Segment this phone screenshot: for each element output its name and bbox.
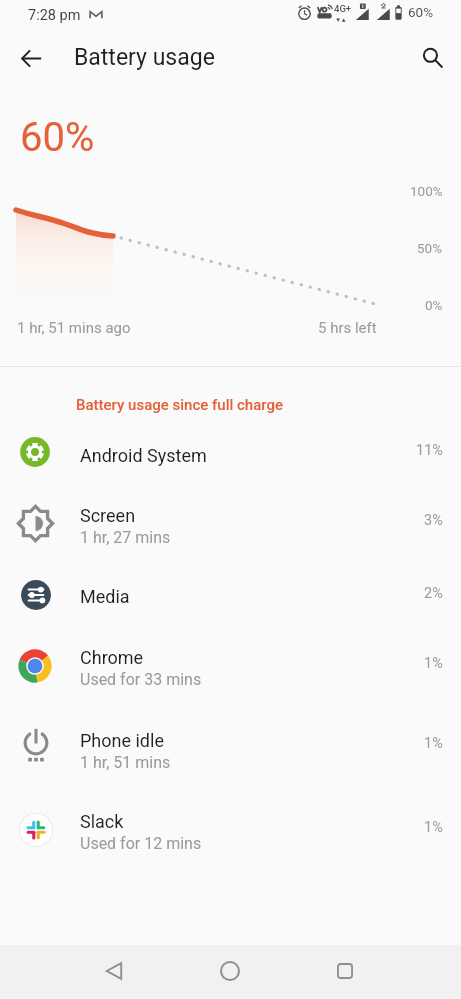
button[interactable]: Back	[90, 947, 138, 995]
staticText: Battery usage since full charge	[76, 396, 283, 414]
staticText: 50%	[417, 240, 443, 256]
staticText: Battery usage	[74, 44, 215, 71]
button[interactable]: Recents	[321, 947, 369, 995]
staticText: 0%	[425, 297, 443, 313]
staticText: 1%	[424, 655, 443, 672]
staticText: Android System	[80, 445, 207, 466]
staticText: 7:28 pm	[28, 7, 81, 24]
staticText: Slack	[80, 811, 124, 832]
staticText: 2%	[424, 585, 443, 602]
staticText: 60%	[20, 114, 95, 161]
staticText: 60%	[408, 4, 434, 20]
staticText: Screen	[80, 505, 136, 526]
button[interactable]	[0, 559, 461, 621]
staticText: Media	[80, 586, 130, 607]
button[interactable]	[0, 416, 461, 478]
button[interactable]	[0, 709, 461, 783]
button[interactable]: Back	[10, 37, 52, 79]
button[interactable]	[0, 793, 461, 867]
staticText: 1 hr, 51 mins	[80, 753, 171, 772]
staticText: 4G+	[334, 3, 352, 14]
staticText: Used for 33 mins	[80, 670, 202, 689]
button[interactable]: Home	[206, 947, 254, 995]
staticText: 1 hr, 51 mins ago	[17, 319, 131, 337]
staticText: Phone idle	[80, 730, 164, 751]
staticText: 5 hrs left	[318, 319, 377, 337]
staticText: 11%	[416, 442, 443, 459]
staticText: 100%	[410, 183, 443, 199]
staticText: 1%	[424, 735, 443, 752]
staticText: 3%	[424, 512, 443, 529]
staticText: Chrome	[80, 647, 144, 668]
button[interactable]: Search	[411, 37, 453, 79]
staticText: Used for 12 mins	[80, 834, 202, 853]
button[interactable]	[0, 486, 461, 560]
button[interactable]	[0, 629, 461, 703]
staticText: 1%	[424, 819, 443, 836]
button[interactable]: Battery usage since full charge	[76, 396, 283, 414]
staticText: 1 hr, 27 mins	[80, 528, 171, 547]
